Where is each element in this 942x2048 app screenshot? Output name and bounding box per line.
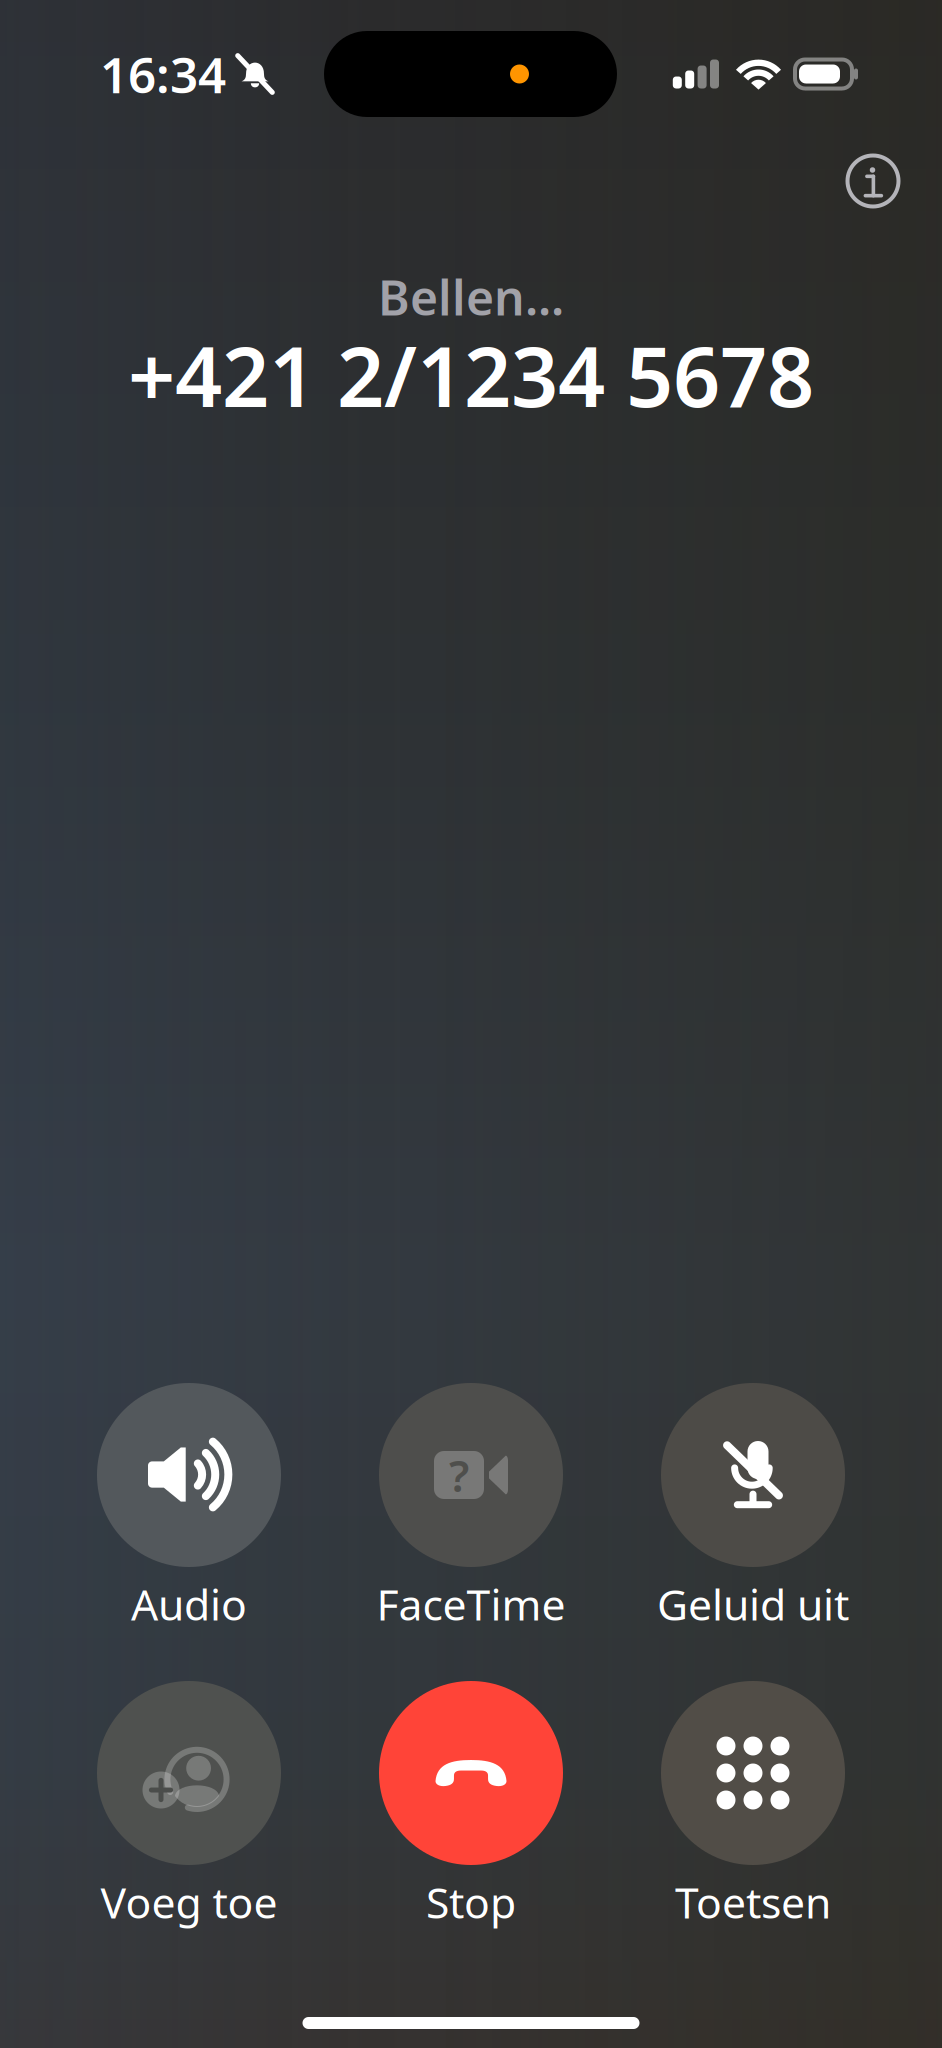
button[interactable]: Voeg toe: [64, 1681, 314, 1925]
staticText: FaceTime: [376, 1576, 565, 1632]
button[interactable]: Stop: [346, 1681, 596, 1925]
button[interactable]: Geluid uit: [628, 1383, 878, 1627]
button[interactable]: Audio: [64, 1383, 314, 1627]
staticText: +421 2/1234 5678: [128, 320, 814, 430]
staticText: 16:34: [100, 41, 226, 107]
staticText: Bellen...: [378, 265, 564, 329]
button[interactable]: Toetsen: [628, 1681, 878, 1925]
staticText: ?: [449, 1446, 469, 1504]
staticText: Stop: [426, 1874, 516, 1930]
staticText: Audio: [131, 1576, 247, 1632]
button[interactable]: Call info: [830, 148, 916, 214]
staticText: Toetsen: [675, 1874, 831, 1930]
staticText: Voeg toe: [100, 1874, 277, 1930]
button[interactable]: ?: [346, 1383, 596, 1627]
staticText: Geluid uit: [657, 1576, 849, 1632]
